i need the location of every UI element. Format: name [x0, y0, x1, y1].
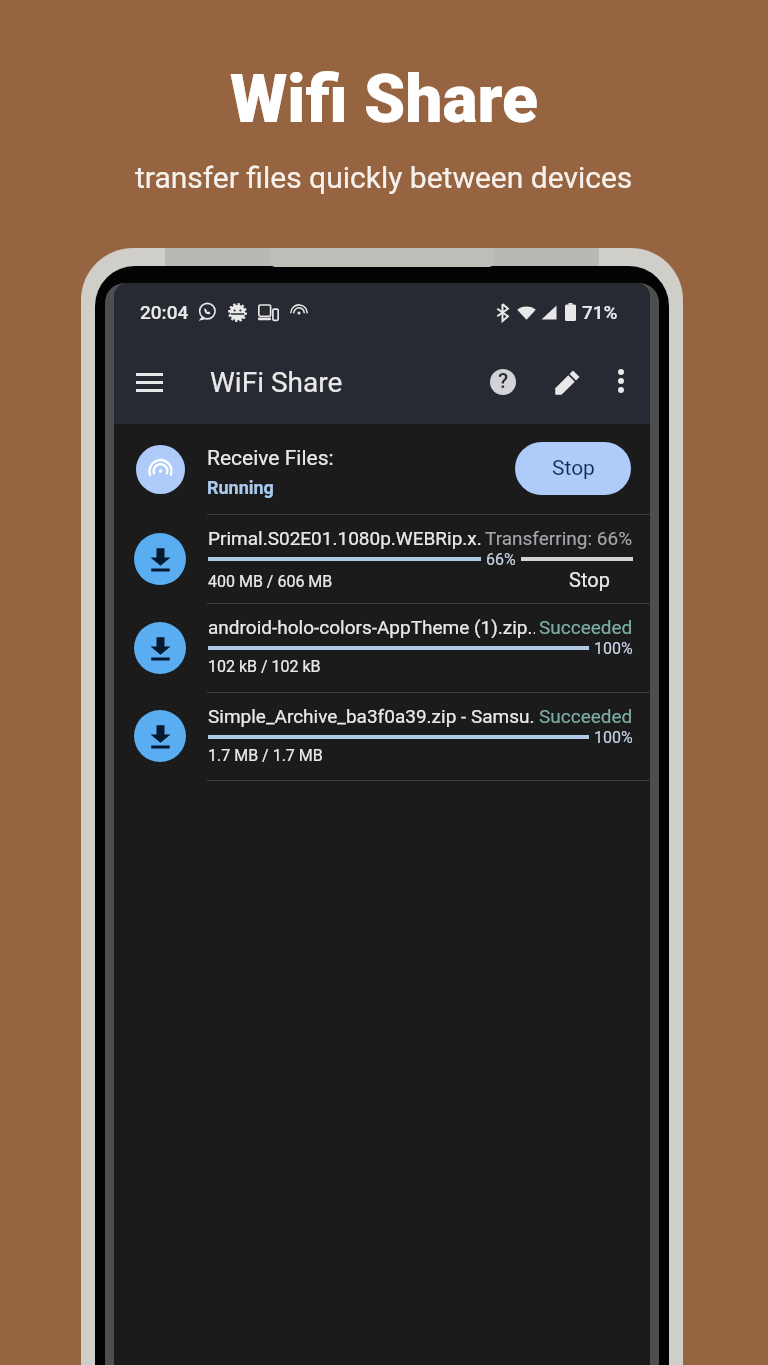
staticText: 102 kB / 102 kB [208, 657, 321, 676]
staticText: Running [207, 477, 274, 498]
staticText: Primal.S02E01.1080p.WEBRip.x… [208, 527, 481, 549]
staticText: Stop [552, 456, 595, 481]
staticText: Succeeded [539, 616, 633, 638]
button[interactable]: Simple_Archive_ba3f0a39.zip - Samsu… [114, 693, 650, 780]
staticText: transfer files quickly between devices [135, 160, 633, 195]
staticText: Wifi Share [230, 61, 538, 138]
staticText: 1.7 MB / 1.7 MB [208, 746, 323, 765]
button[interactable]: Stop [569, 568, 610, 591]
staticText: Transferring: 66% [485, 527, 633, 549]
staticText: 400 MB / 606 MB [208, 572, 333, 591]
button[interactable]: android-holo-colors-AppTheme (1).zip.… [114, 604, 650, 692]
button[interactable]: Help [479, 358, 527, 406]
button[interactable]: Stop [515, 442, 631, 495]
button[interactable]: More options [597, 357, 645, 405]
staticText: 100% [594, 728, 633, 747]
staticText: Receive Files: [207, 446, 334, 471]
staticText: android-holo-colors-AppTheme (1).zip.… [208, 616, 535, 638]
button[interactable]: Primal.S02E01.1080p.WEBRip.x… [114, 515, 650, 603]
staticText: 66% [486, 550, 516, 569]
staticText: ? [498, 369, 509, 394]
staticText: Simple_Archive_ba3f0a39.zip - Samsu… [208, 705, 535, 727]
staticText: 20:04 [140, 301, 189, 323]
staticText: WiFi Share [210, 366, 343, 399]
button[interactable]: Edit [543, 358, 591, 406]
button[interactable]: Open navigation menu [125, 358, 173, 406]
staticText: 71% [582, 301, 618, 323]
staticText: 100% [594, 639, 633, 658]
button[interactable]: Receive Files: [114, 424, 650, 514]
staticText: Succeeded [539, 705, 633, 727]
